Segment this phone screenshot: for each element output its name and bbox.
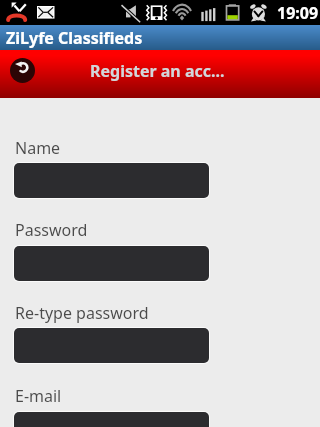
button[interactable]: [13, 245, 210, 282]
staticText: Re-type password: [15, 302, 149, 324]
staticText: E-mail: [15, 385, 62, 407]
staticText: 19:09: [277, 2, 319, 24]
button[interactable]: [13, 411, 210, 427]
staticText: Register an acc...: [90, 60, 225, 82]
staticText: Name: [15, 137, 61, 159]
button[interactable]: [13, 327, 210, 364]
staticText: Password: [15, 219, 88, 241]
button[interactable]: [13, 162, 210, 199]
button[interactable]: Back: [10, 58, 35, 83]
staticText: ZiLyfe Classifieds: [6, 27, 143, 49]
